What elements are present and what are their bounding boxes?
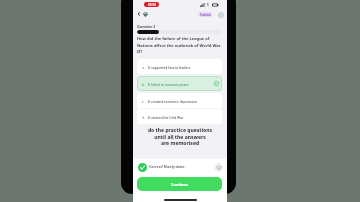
staticText: b. [142,83,145,87]
staticText: Question 3 [137,24,156,29]
staticText: Submit [200,13,211,17]
button[interactable]: Settings [217,11,225,19]
staticText: 09:55 [148,3,156,7]
staticText: a. [142,66,145,70]
button[interactable]: Back [136,11,142,17]
button[interactable]: Submit [198,12,212,17]
button[interactable]: b. [137,76,222,91]
button[interactable]: Continue [137,177,222,191]
button[interactable]: c. [137,93,222,108]
staticText: How did the failure of the League of Nat… [137,36,222,54]
staticText: d. [142,116,145,120]
staticText: It supported fascist leaders [148,66,191,70]
button[interactable]: Feedback [214,163,223,172]
staticText: Correct! Nicely done. [149,164,186,169]
staticText: c. [142,100,145,104]
staticText: It started the Cold War [148,116,184,120]
staticText: It failed to maintain peace [148,83,189,87]
button[interactable]: a. [137,59,222,74]
button[interactable]: d. [137,109,222,124]
button[interactable]: Gems [142,11,149,18]
staticText: It created economic depression [148,100,197,104]
staticText: Continue [171,182,189,187]
staticText: 5G [207,3,210,7]
staticText: do the practice questions until all the … [133,127,227,146]
